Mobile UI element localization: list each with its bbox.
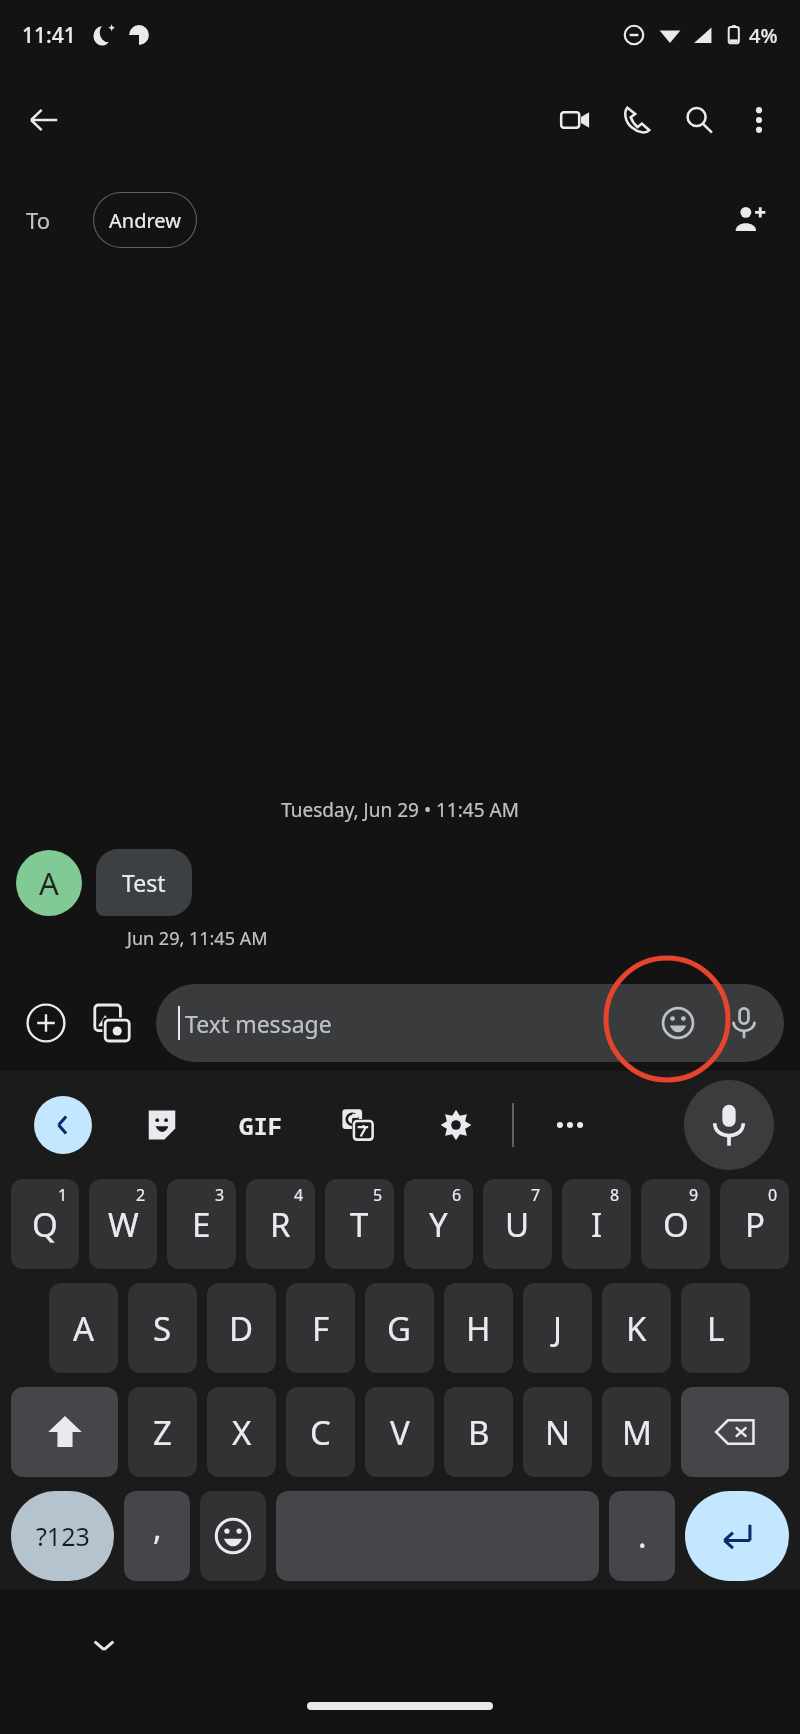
button[interactable]: Backspace [681, 1387, 789, 1477]
button[interactable]: T [325, 1179, 394, 1269]
staticText: Y [429, 1202, 448, 1247]
button[interactable]: A [49, 1283, 118, 1373]
button[interactable]: H [444, 1283, 513, 1373]
staticText: 8 [610, 1184, 620, 1206]
button[interactable]: S [128, 1283, 197, 1373]
button[interactable]: Voice typing [684, 1080, 774, 1170]
button[interactable]: Y [404, 1179, 473, 1269]
staticText: ?123 [36, 1519, 90, 1553]
button[interactable]: L [681, 1283, 750, 1373]
button[interactable]: P [720, 1179, 789, 1269]
button[interactable]: D [207, 1283, 276, 1373]
staticText: 2 [136, 1184, 146, 1206]
button[interactable]: Add attachment [16, 993, 76, 1053]
button[interactable]: Stickers [134, 1097, 190, 1153]
button[interactable]: Enter [685, 1491, 789, 1581]
staticText: 1 [58, 1184, 68, 1206]
staticText: O [663, 1202, 689, 1247]
staticText: F [312, 1306, 330, 1351]
staticText: H [466, 1306, 491, 1351]
button[interactable]: Voice input [718, 997, 770, 1049]
staticText: 3 [215, 1184, 225, 1206]
staticText: P [745, 1202, 765, 1247]
button[interactable]: Q [11, 1179, 79, 1269]
staticText: , [153, 1506, 162, 1550]
button[interactable]: E [167, 1179, 236, 1269]
staticText: G [387, 1306, 412, 1351]
staticText: Text message [185, 1008, 332, 1039]
staticText: . [638, 1514, 647, 1558]
button[interactable]: Text message [156, 984, 784, 1062]
staticText: Test [122, 867, 166, 898]
button[interactable]: Search [668, 89, 730, 151]
staticText: 5 [373, 1184, 383, 1206]
button[interactable]: V [365, 1387, 434, 1477]
button[interactable]: Translate [330, 1097, 386, 1153]
staticText: Z [153, 1410, 172, 1455]
button[interactable]: Andrew [93, 192, 197, 248]
staticText: U [505, 1202, 530, 1247]
button[interactable]: J [523, 1283, 592, 1373]
staticText: B [468, 1410, 490, 1455]
button[interactable]: Z [128, 1387, 197, 1477]
button[interactable]: Video call [544, 89, 606, 151]
button[interactable]: W [89, 1179, 157, 1269]
button[interactable]: Back [14, 90, 74, 150]
staticText: 4% [749, 22, 778, 49]
button[interactable]: Call [606, 89, 668, 151]
button[interactable]: GIF [230, 1094, 292, 1156]
staticText: A [39, 862, 59, 904]
staticText: 4 [294, 1184, 304, 1206]
button[interactable]: X [207, 1387, 276, 1477]
button[interactable]: Expand toolbar [34, 1096, 92, 1154]
button[interactable]: Camera and gallery [82, 993, 142, 1053]
staticText: E [192, 1202, 211, 1247]
button[interactable]: R [246, 1179, 315, 1269]
staticText: R [270, 1202, 291, 1247]
staticText: Jun 29, 11:45 AM [127, 926, 268, 951]
button[interactable]: Emoji [200, 1491, 266, 1581]
button[interactable]: ?123 [11, 1491, 114, 1581]
staticText: 6 [452, 1184, 462, 1206]
button[interactable]: More options [730, 91, 788, 149]
button[interactable]: . [609, 1491, 675, 1581]
button[interactable]: Emoji [652, 997, 704, 1049]
button[interactable]: Shift [11, 1387, 118, 1477]
staticText: Andrew [109, 207, 181, 234]
button[interactable]: Add people [722, 192, 778, 248]
staticText: To [26, 205, 51, 235]
button[interactable]: B [444, 1387, 513, 1477]
button[interactable]: M [602, 1387, 671, 1477]
button[interactable]: F [286, 1283, 355, 1373]
staticText: M [622, 1410, 652, 1455]
staticText: W [108, 1202, 139, 1247]
staticText: X [232, 1410, 252, 1455]
staticText: Q [32, 1202, 58, 1247]
staticText: 7 [531, 1184, 541, 1206]
staticText: D [229, 1306, 254, 1351]
staticText: J [553, 1306, 563, 1351]
button[interactable]: O [641, 1179, 710, 1269]
button[interactable]: Test [96, 849, 192, 916]
staticText: K [626, 1306, 647, 1351]
button[interactable]: Hide keyboard [78, 1619, 130, 1671]
staticText: C [310, 1410, 331, 1455]
staticText: I [591, 1202, 603, 1247]
staticText: 0 [768, 1184, 778, 1206]
button[interactable]: U [483, 1179, 552, 1269]
button[interactable]: G [365, 1283, 434, 1373]
button[interactable]: K [602, 1283, 671, 1373]
button[interactable]: C [286, 1387, 355, 1477]
staticText: V [390, 1410, 410, 1455]
button[interactable]: , [124, 1491, 190, 1581]
button[interactable]: More tools [542, 1097, 598, 1153]
button[interactable]: N [523, 1387, 592, 1477]
staticText: A [73, 1306, 95, 1351]
button[interactable]: Keyboard settings [428, 1097, 484, 1153]
button[interactable]: I [562, 1179, 631, 1269]
staticText: 11:41 [22, 21, 76, 50]
staticText: N [545, 1410, 571, 1455]
staticText: 9 [689, 1184, 699, 1206]
staticText: L [707, 1306, 725, 1351]
